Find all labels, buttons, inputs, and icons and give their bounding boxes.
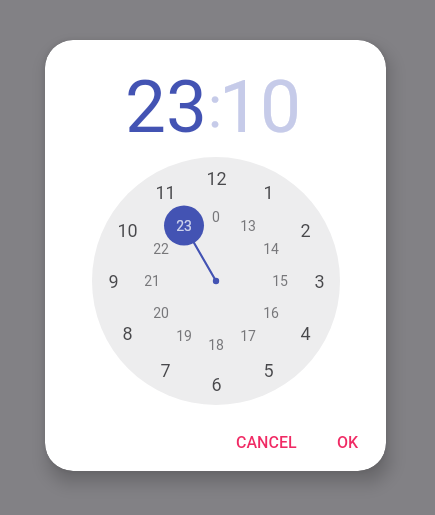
staticText: OK	[337, 433, 359, 452]
button[interactable]: 23	[168, 210, 200, 242]
staticText: 16	[263, 305, 279, 321]
button[interactable]: CANCEL	[221, 422, 311, 462]
staticText: 6	[211, 374, 222, 395]
staticText: 5	[263, 360, 274, 381]
staticText: 4	[300, 323, 311, 344]
staticText: 19	[176, 328, 192, 344]
button[interactable]: 13	[232, 210, 264, 242]
staticText: 2	[300, 220, 311, 241]
staticText: 11	[155, 182, 176, 203]
staticText: 15	[272, 273, 288, 289]
staticText: 12	[206, 168, 227, 189]
button[interactable]: 14	[255, 233, 287, 265]
staticText: 23	[176, 218, 192, 234]
staticText: 3	[314, 271, 325, 292]
staticText: 22	[153, 241, 169, 257]
staticText: 8	[122, 323, 133, 344]
staticText: 7	[160, 360, 171, 381]
button[interactable]: 22	[145, 233, 177, 265]
staticText: 18	[208, 337, 224, 353]
staticText: 10	[117, 220, 138, 241]
button[interactable]: 9	[97, 265, 129, 297]
button[interactable]: OK	[318, 422, 378, 462]
button[interactable]: 17	[232, 320, 264, 352]
button[interactable]: 23	[125, 64, 208, 150]
button[interactable]: 6	[200, 368, 232, 400]
staticText: :	[208, 73, 223, 141]
button[interactable]: 11	[149, 176, 181, 208]
button[interactable]: 21	[136, 265, 168, 297]
button[interactable]: 10	[219, 64, 302, 150]
button[interactable]: 10	[111, 214, 143, 246]
staticText: 17	[240, 328, 256, 344]
staticText: 20	[153, 305, 169, 321]
staticText: 13	[240, 218, 256, 234]
staticText: CANCEL	[236, 433, 297, 452]
staticText: 9	[108, 271, 119, 292]
button[interactable]: 3	[303, 265, 335, 297]
button[interactable]: 18	[200, 329, 232, 361]
button[interactable]: 19	[168, 320, 200, 352]
button[interactable]: 4	[289, 317, 321, 349]
button[interactable]: 5	[252, 354, 284, 386]
button[interactable]: 12	[200, 162, 232, 194]
button[interactable]: 7	[149, 354, 181, 386]
button[interactable]: 0	[200, 201, 232, 233]
button[interactable]: 20	[145, 297, 177, 329]
button[interactable]: 2	[289, 214, 321, 246]
staticText: 1	[263, 182, 274, 203]
button[interactable]: 8	[111, 317, 143, 349]
button[interactable]: 15	[264, 265, 296, 297]
staticText: 14	[263, 241, 279, 257]
button[interactable]: 16	[255, 297, 287, 329]
staticText: 0	[212, 209, 220, 225]
staticText: 21	[144, 273, 160, 289]
button[interactable]: 1	[252, 176, 284, 208]
